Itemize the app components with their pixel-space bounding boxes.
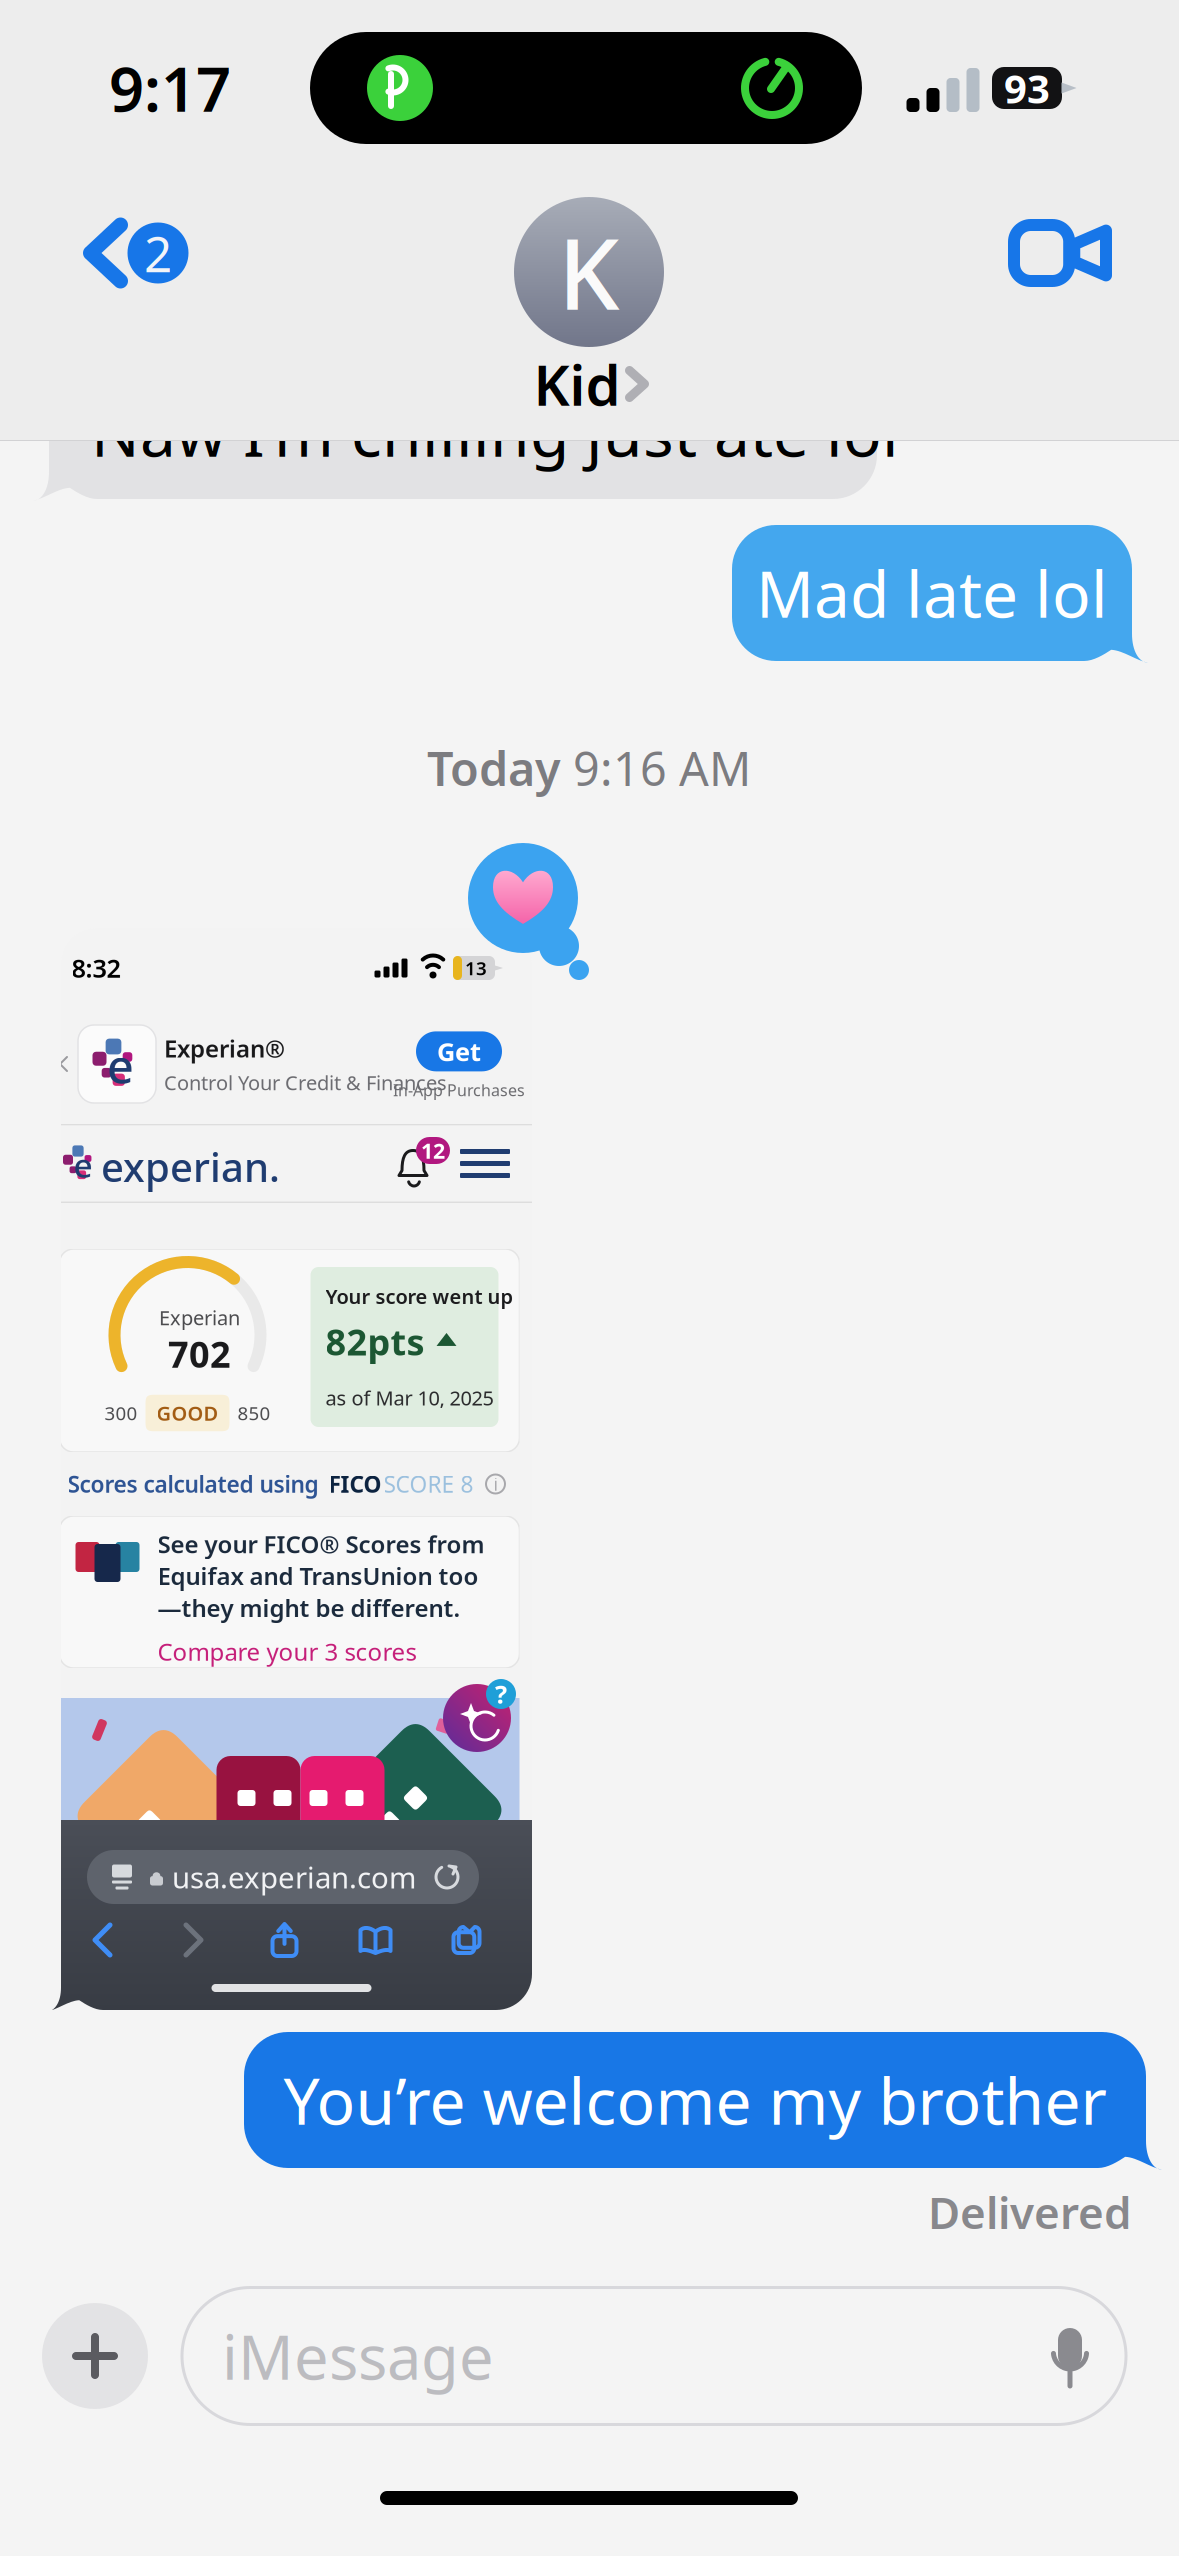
staticText: as of Mar 10, 2025	[325, 1384, 493, 1411]
staticText: Kid	[533, 347, 620, 421]
staticText: You’re welcome my brother	[283, 2057, 1106, 2142]
staticText: Scores calculated using	[67, 1469, 318, 1499]
staticText: Control Your Credit & Finances	[164, 1069, 447, 1096]
staticText: SCORE 8	[383, 1469, 473, 1499]
staticText: experian.	[101, 1140, 280, 1193]
staticText: See your FICO® Scores from Equifax and T…	[157, 1528, 484, 1624]
staticText: FICO	[328, 1469, 381, 1499]
button[interactable]: Add attachment	[42, 2303, 148, 2409]
staticText: Mad late lol	[756, 550, 1108, 635]
staticText: e	[107, 1035, 134, 1097]
button[interactable]: 2	[31, 196, 216, 309]
staticText: GOOD	[156, 1400, 218, 1426]
button[interactable]: iMessage	[182, 2287, 1126, 2424]
staticText: Experian	[159, 1304, 240, 1331]
staticText: iMessage	[222, 2315, 494, 2397]
staticText: usa.experian.com	[172, 1857, 416, 1896]
staticText: ?	[495, 1677, 507, 1711]
staticText: 13	[465, 956, 487, 980]
staticText: 12	[421, 1136, 445, 1165]
staticText: Delivered	[928, 2183, 1132, 2241]
staticText: i	[493, 1472, 497, 1495]
staticText: 93	[1004, 61, 1050, 114]
staticText: 82pts	[325, 1318, 424, 1365]
staticText: Today	[427, 737, 561, 799]
staticText: 9:17	[109, 47, 231, 129]
staticText: 8:32	[71, 951, 120, 985]
staticText: Compare your 3 scores	[157, 1636, 416, 1667]
button[interactable]: FaceTime video call	[982, 199, 1144, 307]
staticText: Naw I’m chilling just ate lol	[91, 389, 899, 474]
staticText: 2	[144, 220, 172, 286]
staticText: Experian®	[164, 1032, 285, 1064]
staticText: K	[558, 207, 620, 337]
staticText: 702	[168, 1330, 231, 1378]
staticText: In-App Purchases	[393, 1079, 525, 1101]
staticText: 9:16 AM	[573, 737, 751, 799]
button[interactable]: K	[469, 196, 709, 410]
staticText: Your score went up	[325, 1283, 513, 1310]
staticText: e	[73, 1143, 92, 1187]
staticText: 300	[104, 1401, 137, 1425]
staticText: Get	[437, 1035, 481, 1068]
staticText: 850	[237, 1401, 270, 1425]
